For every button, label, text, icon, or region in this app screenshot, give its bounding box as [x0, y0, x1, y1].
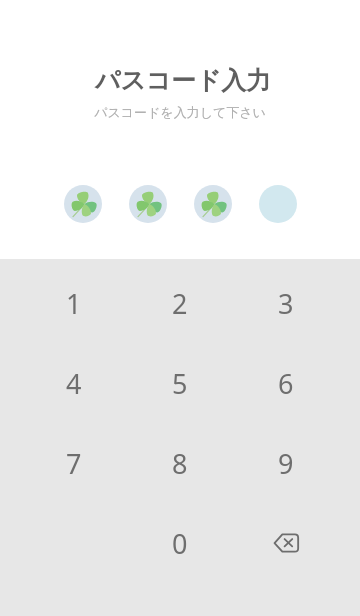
button[interactable]: 9 [233, 423, 339, 503]
button[interactable]: 3 [233, 263, 339, 343]
staticText: 9 [278, 445, 294, 482]
button[interactable]: 2 [127, 263, 233, 343]
button[interactable]: 6 [233, 343, 339, 423]
button[interactable]: 7 [21, 423, 127, 503]
button[interactable]: 0 [127, 503, 233, 583]
button[interactable]: 5 [127, 343, 233, 423]
button[interactable]: 8 [127, 423, 233, 503]
staticText: 4 [66, 365, 82, 402]
staticText: 2 [172, 285, 188, 322]
other: Backspace [274, 530, 300, 556]
staticText: 1 [66, 285, 82, 322]
staticText: パスコード入力 [95, 65, 271, 96]
staticText: 3 [278, 285, 294, 322]
staticText: 7 [66, 445, 82, 482]
staticText: パスコードを入力して下さい [94, 104, 266, 120]
button[interactable]: 4 [21, 343, 127, 423]
button[interactable]: Backspace [233, 503, 339, 583]
staticText: 6 [278, 365, 294, 402]
staticText: 5 [172, 365, 188, 402]
button[interactable]: 1 [21, 263, 127, 343]
staticText: 0 [172, 525, 188, 562]
staticText: 8 [172, 445, 188, 482]
